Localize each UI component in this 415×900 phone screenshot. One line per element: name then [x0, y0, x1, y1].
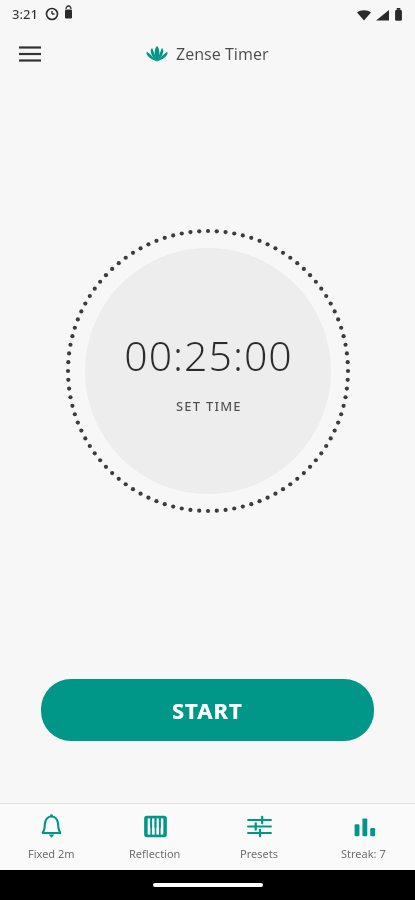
- staticText: START: [172, 695, 243, 725]
- staticText: Zense Timer: [176, 43, 269, 65]
- button[interactable]: Streak: 7: [311, 804, 415, 870]
- staticText: Presets: [240, 846, 278, 861]
- staticText: Streak: 7: [341, 846, 386, 861]
- button[interactable]: Reflection: [103, 804, 207, 870]
- button[interactable]: Open navigation menu: [8, 32, 52, 76]
- button[interactable]: 00:25:00: [63, 226, 353, 516]
- staticText: 3:21: [12, 5, 38, 23]
- staticText: SET TIME: [176, 397, 242, 415]
- staticText: Reflection: [129, 846, 181, 861]
- button[interactable]: Fixed 2m: [0, 804, 103, 870]
- staticText: Fixed 2m: [28, 846, 75, 861]
- button[interactable]: Presets: [207, 804, 311, 870]
- staticText: 00:25:00: [124, 327, 293, 383]
- button[interactable]: START: [41, 679, 374, 741]
